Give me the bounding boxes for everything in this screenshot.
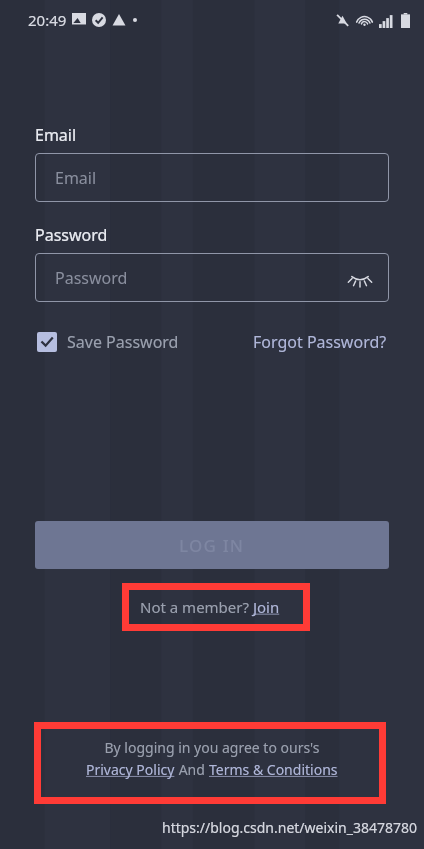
staticText: And — [175, 760, 209, 779]
button[interactable]: Show password — [345, 263, 375, 293]
staticText: Email — [35, 124, 77, 146]
staticText: 20:49 — [28, 10, 67, 30]
staticText: Email — [55, 167, 97, 189]
button[interactable]: Not a member? Join — [136, 594, 284, 620]
staticText: Password — [55, 267, 128, 289]
button[interactable]: Save Password — [35, 327, 181, 357]
staticText: Save Password — [67, 331, 179, 353]
staticText: Terms & Conditions — [209, 760, 338, 779]
staticText: By logging in you agree to ours's — [104, 738, 320, 757]
button[interactable]: Terms & Conditions — [209, 760, 338, 779]
staticText: Password — [35, 224, 108, 246]
button[interactable]: Email — [35, 153, 389, 202]
button[interactable]: Forgot Password? — [251, 327, 389, 357]
button[interactable]: Password — [35, 253, 389, 302]
staticText: https://blog.csdn.net/weixin_38478780 — [162, 818, 418, 837]
staticText: Privacy Policy — [86, 760, 175, 779]
staticText: Not a member? Join — [140, 597, 280, 617]
staticText: LOG IN — [179, 534, 245, 557]
button[interactable]: Privacy Policy — [86, 760, 175, 779]
staticText: Forgot Password? — [253, 331, 387, 353]
